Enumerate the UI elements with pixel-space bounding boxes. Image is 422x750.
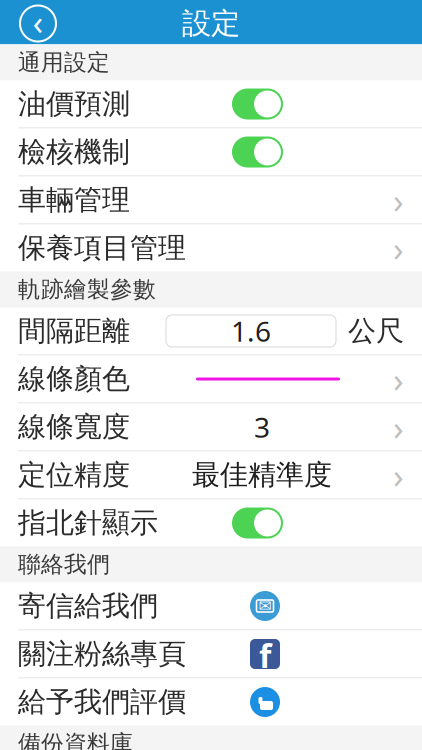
staticText: 指北針顯示 [18, 506, 158, 540]
button[interactable]: 關注粉絲專頁 [0, 630, 422, 677]
staticText: › [393, 404, 404, 450]
staticText: 定位精度 [18, 458, 130, 492]
staticText: f [259, 634, 271, 677]
button[interactable]: 線條顏色 [0, 355, 422, 402]
button[interactable]: 給予我們評價 [0, 678, 422, 725]
staticText: 車輛管理 [18, 183, 130, 217]
staticText: › [393, 177, 404, 223]
staticText: 3 [254, 408, 270, 446]
staticText: 油價預測 [18, 87, 130, 121]
staticText: 間隔距離 [18, 314, 130, 348]
staticText: ‹ [32, 0, 43, 44]
staticText: 備份資料庫 [18, 730, 133, 750]
staticText: 線條寬度 [18, 410, 130, 444]
staticText: 設定 [182, 5, 240, 41]
button[interactable]: 寄信給我們 [0, 582, 422, 629]
staticText: Carrier [10, 0, 74, 5]
staticText: 軌跡繪製參數 [18, 276, 156, 303]
staticText: 檢核機制 [18, 135, 130, 169]
button[interactable]: 定位精度 [0, 451, 422, 498]
staticText: › [393, 356, 404, 402]
staticText: 保養項目管理 [18, 231, 186, 265]
button[interactable]: 指北針顯示 [0, 499, 422, 546]
button[interactable]: 檢核機制 [0, 128, 422, 175]
staticText: ✉ [258, 597, 271, 615]
button[interactable]: 保養項目管理 [0, 224, 422, 271]
staticText: 關注粉絲專頁 [18, 637, 186, 671]
staticText: 公尺 [348, 314, 404, 348]
staticText: 最佳精準度 [192, 458, 332, 492]
staticText: 通用設定 [18, 49, 110, 76]
button[interactable]: 油價預測 [0, 80, 422, 127]
staticText: 聯絡我們 [18, 551, 110, 578]
staticText: 寄信給我們 [18, 589, 158, 623]
staticText: 線條顏色 [18, 362, 130, 396]
staticText: 給予我們評價 [18, 685, 186, 719]
button[interactable]: 線條寬度 [0, 403, 422, 450]
staticText: › [393, 225, 404, 271]
button[interactable]: 車輛管理 [0, 176, 422, 223]
staticText: 1.6 [231, 312, 271, 350]
staticText: › [393, 452, 404, 498]
button[interactable]: Back [16, 1, 60, 45]
